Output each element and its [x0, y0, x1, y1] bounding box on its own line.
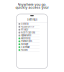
button[interactable]: General — [19, 23, 40, 25]
staticText: Privacy — [21, 28, 28, 31]
staticText: Appearance — [21, 34, 31, 37]
button[interactable]: Transcripts — [19, 40, 40, 43]
staticText: Transcripts — [21, 40, 32, 43]
staticText: Accessibility — [21, 25, 34, 28]
staticText: quickly access your — [15, 5, 48, 9]
button[interactable]: Appearance — [19, 34, 40, 37]
button[interactable]: Privacy — [19, 28, 40, 31]
staticText: Recording — [21, 37, 30, 40]
button[interactable]: Accessibility — [19, 25, 40, 28]
staticText: General — [21, 23, 29, 25]
staticText: Calendar — [21, 46, 30, 48]
button[interactable]: Storage — [19, 43, 40, 46]
button[interactable]: Recording — [19, 37, 40, 40]
button[interactable]: Account — [19, 49, 40, 52]
staticText: Settings — [27, 18, 37, 21]
button[interactable]: Notifications — [19, 31, 40, 34]
staticText: Storage — [21, 43, 28, 45]
button[interactable]: Calendar — [19, 46, 40, 49]
staticText: Anywhere you go, — [17, 3, 46, 7]
staticText: Notifications — [21, 31, 35, 34]
staticText: Account — [21, 49, 28, 51]
